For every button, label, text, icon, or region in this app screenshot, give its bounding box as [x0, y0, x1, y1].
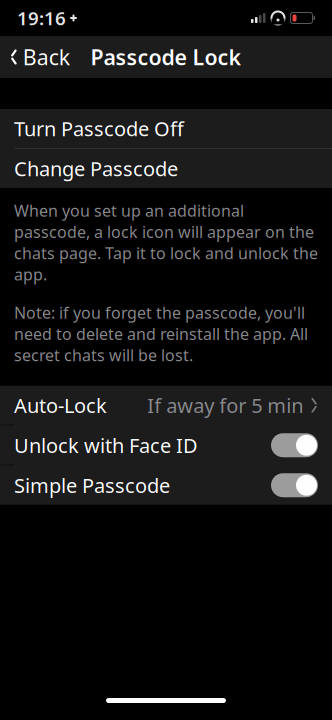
staticText: Auto-Lock: [14, 392, 107, 419]
button[interactable]: Auto-Lock: [0, 386, 332, 425]
staticText: Passcode Lock: [90, 43, 241, 71]
button[interactable]: Simple Passcode: [0, 466, 332, 505]
staticText: 19:16: [17, 6, 66, 30]
staticText: Turn Passcode Off: [14, 115, 184, 142]
staticText: Unlock with Face ID: [14, 432, 198, 459]
button[interactable]: Change Passcode: [0, 149, 332, 188]
staticText: Change Passcode: [14, 155, 178, 182]
staticText: Note: if you forget the passcode, you'll…: [14, 302, 308, 366]
staticText: Back: [23, 43, 70, 71]
button[interactable]: Turn Passcode Off: [0, 109, 332, 148]
staticText: Simple Passcode: [14, 472, 170, 499]
button[interactable]: Back: [0, 36, 82, 78]
staticText: When you set up an additional passcode, …: [14, 200, 318, 285]
staticText: If away for 5 min: [147, 392, 303, 419]
button[interactable]: Unlock with Face ID: [0, 426, 332, 465]
